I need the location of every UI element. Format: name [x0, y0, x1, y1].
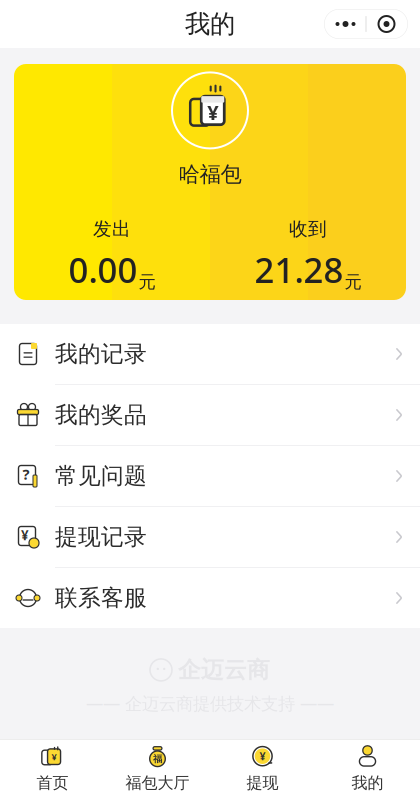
- staticText: 我的: [185, 8, 235, 39]
- button[interactable]: ?: [0, 446, 420, 506]
- staticText: 哈福包: [178, 161, 241, 188]
- staticText: 常见问题: [55, 462, 147, 490]
- button[interactable]: ¥: [0, 740, 105, 796]
- staticText: 元: [138, 271, 155, 293]
- button[interactable]: 联系客服: [0, 568, 420, 628]
- staticText: ¥: [21, 526, 29, 544]
- staticText: 福: [153, 753, 162, 764]
- button[interactable]: 我的奖品: [0, 385, 420, 445]
- button[interactable]: ¥: [210, 740, 315, 796]
- staticText: 联系客服: [55, 584, 147, 612]
- button[interactable]: ¥: [0, 507, 420, 567]
- staticText: 我的记录: [55, 340, 147, 368]
- staticText: 首页: [36, 773, 68, 793]
- staticText: 收到: [289, 218, 327, 240]
- button[interactable]: Close: [366, 9, 406, 39]
- staticText: 我的奖品: [55, 401, 147, 429]
- button[interactable]: More: [325, 9, 365, 39]
- staticText: 企迈云商: [178, 656, 270, 684]
- staticText: 元: [344, 271, 361, 293]
- button[interactable]: 我的记录: [0, 324, 420, 384]
- staticText: —— 企迈云商提供技术支持 ——: [86, 692, 334, 715]
- staticText: ¥: [259, 749, 265, 763]
- staticText: ¥: [207, 99, 218, 126]
- button[interactable]: 我的: [315, 740, 420, 796]
- staticText: ?: [22, 464, 29, 484]
- staticText: 我的: [351, 773, 383, 793]
- staticText: 福包大厅: [125, 773, 189, 793]
- staticText: 发出: [93, 218, 131, 240]
- staticText: ¥: [52, 750, 57, 763]
- staticText: 0.00: [68, 246, 137, 292]
- staticText: 提现记录: [55, 523, 147, 551]
- staticText: 提现: [246, 773, 278, 793]
- button[interactable]: 福: [105, 740, 210, 796]
- staticText: 21.28: [254, 246, 343, 292]
